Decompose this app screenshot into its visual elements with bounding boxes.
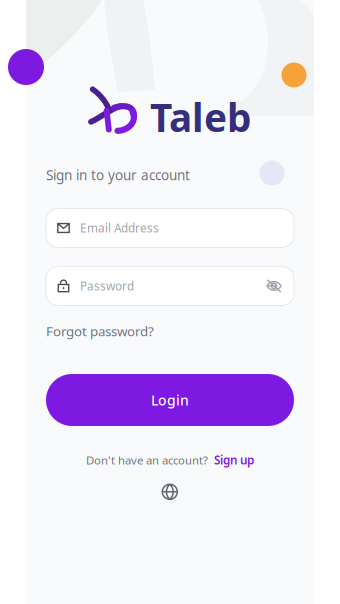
button[interactable]: Sign up (214, 452, 254, 468)
staticText: Don't have an account? (86, 452, 208, 468)
staticText: Sign up (214, 452, 254, 468)
staticText: Taleb (150, 91, 251, 143)
staticText: Sign in to your account (46, 166, 190, 184)
button[interactable]: Forgot password? (46, 321, 294, 341)
staticText: Email Address (80, 220, 159, 236)
staticText: Forgot password? (46, 322, 154, 340)
button[interactable]: Login (46, 374, 294, 426)
staticText: Login (151, 390, 189, 410)
staticText: Password (80, 278, 134, 294)
button[interactable]: Language (161, 483, 178, 500)
